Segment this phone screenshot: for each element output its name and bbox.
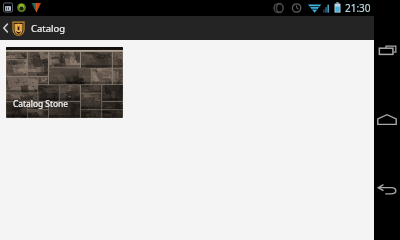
button[interactable]: App icon bbox=[11, 16, 26, 40]
button[interactable]: Recent apps bbox=[374, 30, 400, 70]
button[interactable]: Catalog Stone bbox=[6, 47, 123, 118]
staticText: Catalog bbox=[31, 22, 66, 35]
button[interactable]: Home bbox=[374, 99, 400, 139]
button[interactable]: Navigate up bbox=[0, 16, 11, 40]
staticText: Catalog Stone bbox=[13, 98, 68, 109]
button[interactable]: Back bbox=[374, 169, 400, 209]
staticText: 21:30 bbox=[345, 1, 371, 15]
